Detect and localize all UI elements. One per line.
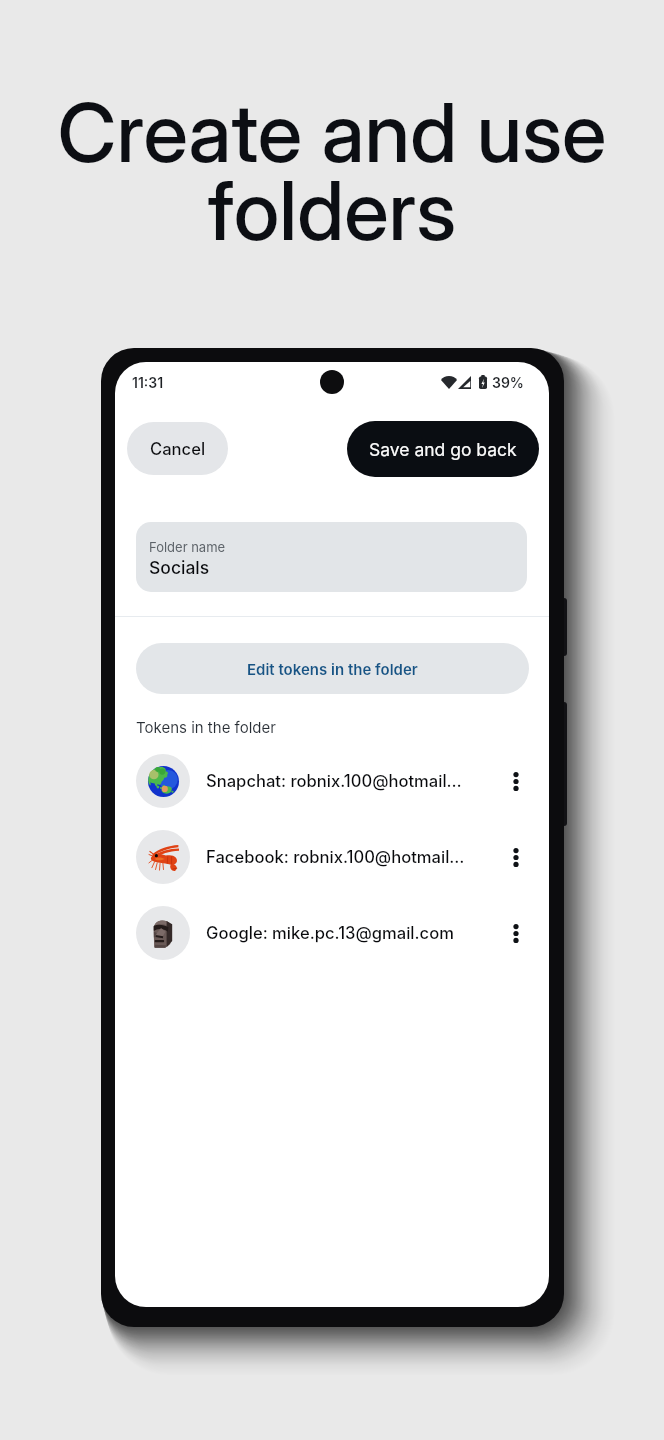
button[interactable]: Edit tokens in the folder (136, 643, 529, 694)
button[interactable]: More options (500, 909, 532, 957)
staticText: Facebook: robnix.100@hotmail… (206, 847, 465, 867)
button[interactable]: Folder name (136, 522, 527, 592)
staticText: 39% (492, 374, 524, 391)
staticText: 11:31 (132, 374, 164, 391)
staticText: Google: mike.pc.13@gmail.com (206, 923, 454, 943)
staticText: Edit tokens in the folder (247, 660, 418, 678)
staticText: Tokens in the folder (136, 718, 276, 736)
staticText: Create and use folders (0, 83, 664, 260)
button[interactable]: More options (500, 757, 532, 805)
staticText: Cancel (150, 439, 206, 459)
button[interactable]: Save and go back (347, 421, 539, 477)
staticText: Snapchat: robnix.100@hotmail… (206, 771, 462, 791)
button[interactable]: Google: mike.pc.13@gmail.com (115, 895, 549, 971)
staticText: Socials (149, 557, 210, 578)
button[interactable]: Cancel (127, 422, 228, 475)
staticText: Folder name (149, 539, 226, 555)
button[interactable]: Facebook: robnix.100@hotmail… (115, 819, 549, 895)
staticText: Save and go back (369, 439, 517, 460)
button[interactable]: More options (500, 833, 532, 881)
button[interactable]: Snapchat: robnix.100@hotmail… (115, 743, 549, 819)
